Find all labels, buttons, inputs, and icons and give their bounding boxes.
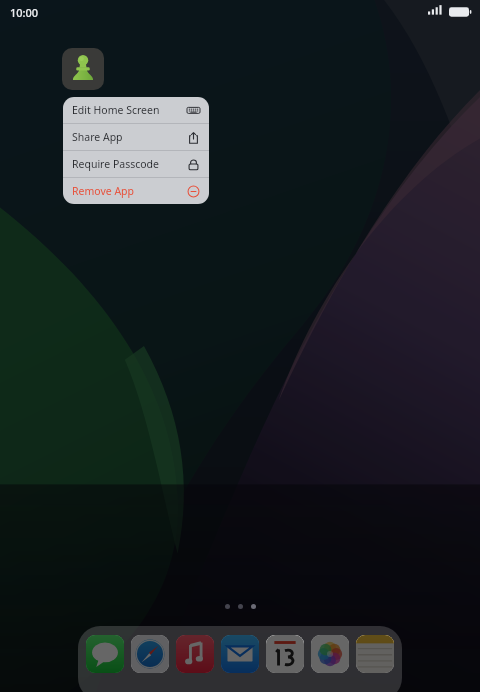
button[interactable]: Edit Home Screen: [63, 97, 209, 123]
button[interactable]: Safari: [131, 635, 169, 673]
button[interactable]: Remove App: [63, 178, 209, 204]
button[interactable]: Photos: [311, 635, 349, 673]
staticText: Require Passcode: [72, 157, 159, 171]
button[interactable]: Require Passcode: [63, 151, 209, 177]
button[interactable]: Chess app: [62, 48, 104, 90]
button[interactable]: Notes: [356, 635, 394, 673]
button[interactable]: Mail: [221, 635, 259, 673]
button[interactable]: Calendar: [266, 635, 304, 673]
staticText: Edit Home Screen: [72, 103, 160, 117]
button[interactable]: Messages: [86, 635, 124, 673]
staticText: Remove App: [72, 184, 135, 198]
button[interactable]: Share App: [63, 124, 209, 150]
staticText: 10:00: [10, 5, 39, 20]
staticText: Share App: [72, 130, 123, 144]
button[interactable]: Music: [176, 635, 214, 673]
